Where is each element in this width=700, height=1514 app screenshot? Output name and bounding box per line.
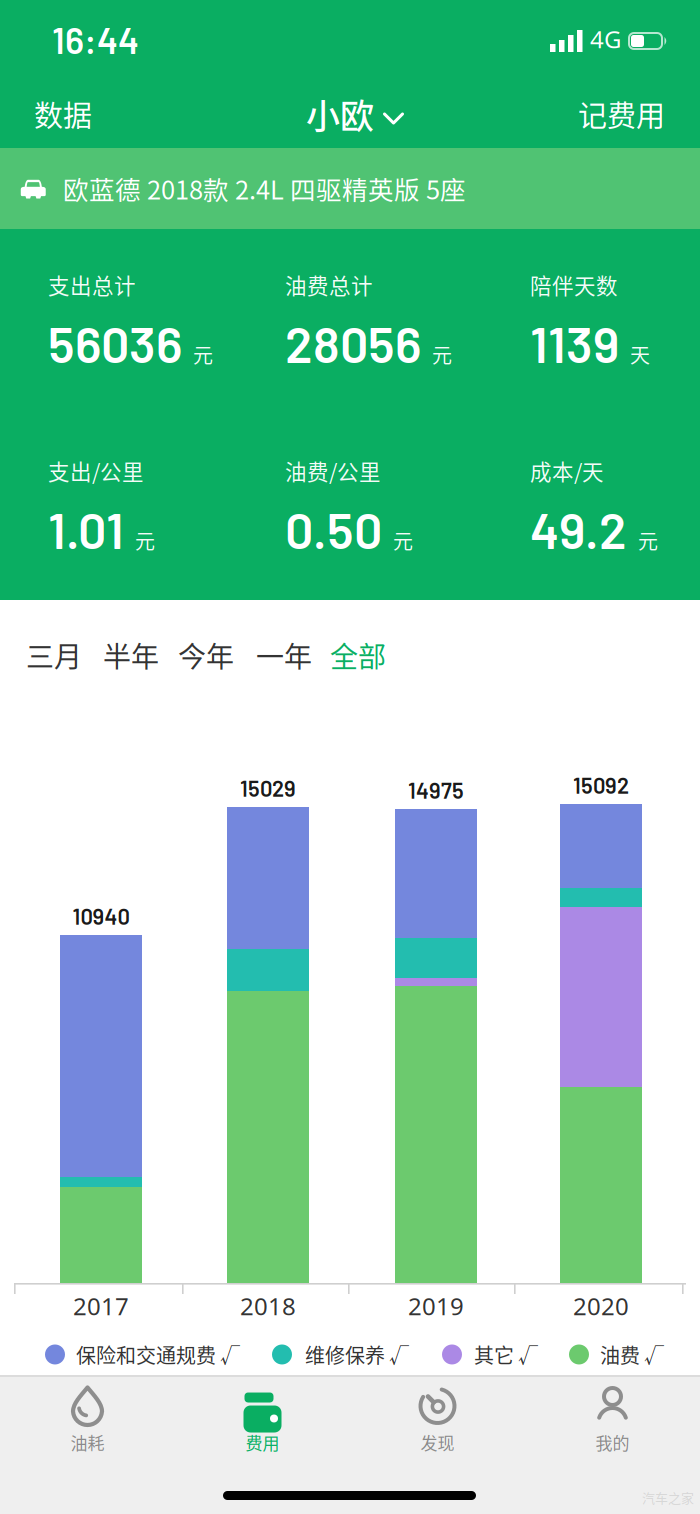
staticText: 15029 [240, 775, 296, 801]
staticText: 半年 [103, 635, 159, 675]
staticText: 1139 [530, 313, 619, 373]
staticText: 费用 [245, 1430, 279, 1455]
staticText: 元 [193, 340, 213, 369]
staticText: 14975 [408, 777, 464, 803]
staticText: 元 [393, 526, 413, 555]
staticText: 49.2 [530, 499, 627, 559]
button[interactable]: 油耗 [0, 1377, 175, 1514]
staticText: 0.50 [285, 499, 382, 559]
button[interactable]: 数据 [26, 85, 100, 143]
button[interactable]: 其它 √ [442, 1340, 538, 1369]
staticText: 2019 [408, 1290, 464, 1322]
staticText: 2018 [240, 1290, 296, 1322]
staticText: 油费 √ [600, 1340, 664, 1369]
staticText: 元 [638, 526, 658, 555]
staticText: 记费用 [578, 93, 665, 135]
button[interactable]: 我的 [525, 1377, 700, 1514]
staticText: 油费总计 [285, 269, 373, 300]
staticText: 1.01 [48, 499, 124, 559]
staticText: 2020 [573, 1290, 629, 1322]
button[interactable]: 发现 [350, 1377, 525, 1514]
staticText: 今年 [178, 635, 234, 675]
button[interactable]: 维修保养 √ [272, 1340, 409, 1369]
button[interactable]: 半年 [97, 629, 165, 681]
staticText: 元 [432, 340, 452, 369]
staticText: 汽车之家 [642, 1488, 694, 1507]
staticText: 元 [135, 526, 155, 555]
staticText: 28056 [285, 313, 421, 373]
staticText: 56036 [48, 313, 182, 373]
button[interactable]: 小欧 [306, 85, 404, 143]
button[interactable]: 一年 [250, 629, 318, 681]
staticText: 支出总计 [48, 269, 136, 300]
staticText: 保险和交通规费 √ [76, 1340, 240, 1369]
staticText: 成本/天 [530, 455, 604, 486]
button[interactable]: 保险和交通规费 √ [45, 1340, 240, 1369]
button[interactable]: 记费用 [570, 85, 673, 143]
button[interactable]: 油费 √ [569, 1340, 664, 1369]
staticText: 15092 [573, 772, 629, 798]
staticText: 发现 [420, 1430, 454, 1455]
button[interactable]: 欧蓝德 2018款 2.4L 四驱精英版 5座 [0, 148, 700, 229]
staticText: 欧蓝德 2018款 2.4L 四驱精英版 5座 [63, 170, 466, 207]
staticText: 其它 √ [474, 1340, 538, 1369]
staticText: 16:44 [52, 18, 139, 61]
staticText: 三月 [26, 635, 82, 675]
staticText: 数据 [34, 93, 92, 135]
staticText: 4G [590, 23, 621, 55]
staticText: 全部 [330, 635, 386, 675]
staticText: 小欧 [306, 89, 374, 139]
staticText: 油耗 [70, 1430, 104, 1455]
staticText: 2017 [73, 1290, 129, 1322]
staticText: 支出/公里 [48, 455, 144, 486]
staticText: 10940 [72, 903, 129, 929]
staticText: 天 [630, 340, 650, 369]
staticText: 维修保养 √ [305, 1340, 409, 1369]
button[interactable]: 全部 [324, 629, 392, 681]
staticText: 陪伴天数 [530, 269, 618, 300]
staticText: 油费/公里 [285, 455, 381, 486]
staticText: 我的 [595, 1430, 629, 1455]
staticText: 一年 [256, 635, 312, 675]
button[interactable]: 费用 [175, 1377, 350, 1514]
button[interactable]: 三月 [20, 629, 88, 681]
button[interactable]: 今年 [172, 629, 240, 681]
